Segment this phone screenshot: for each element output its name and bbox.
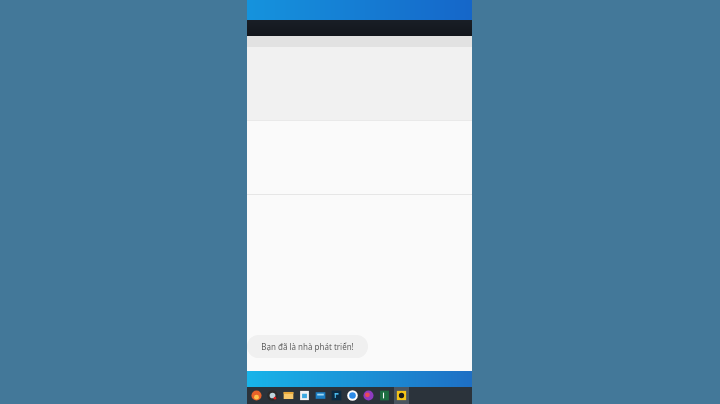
button[interactable]: Firefox xyxy=(250,387,262,404)
button[interactable]: Browser xyxy=(362,387,374,404)
button[interactable]: Bạn đã là nhà phát triển! xyxy=(247,335,368,358)
button[interactable]: Messenger xyxy=(346,387,358,404)
button[interactable]: Store xyxy=(298,387,310,404)
button[interactable]: Photoshop xyxy=(330,387,342,404)
staticText: Bạn đã là nhà phát triển! xyxy=(261,341,354,352)
button[interactable]: File Explorer xyxy=(282,387,294,404)
button[interactable]: Active app xyxy=(394,387,409,404)
button[interactable]: Speedtest xyxy=(266,387,278,404)
button[interactable]: Excel xyxy=(378,387,390,404)
button[interactable]: Mail xyxy=(314,387,326,404)
